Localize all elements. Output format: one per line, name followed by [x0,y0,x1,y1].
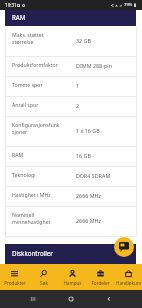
staticText: Teknologi [12,171,62,178]
staticText: Hampus [63,280,82,286]
staticText: 1 x 16 GB [76,127,136,134]
button[interactable]: Teknologi [0,167,142,187]
staticText: Diskkontroller [12,249,53,257]
staticText: 2 [76,102,136,109]
staticText: Fordeler [91,280,110,286]
staticText: Handlekurv [116,280,141,286]
staticText: Produktformfaktor [12,61,62,68]
staticText: 2666 MHz [76,217,136,224]
staticText: 32 GB [76,37,136,44]
staticText: Nominell minnehastighet [12,211,62,226]
staticText: RAM [12,151,62,158]
button[interactable]: RAM [5,10,136,26]
button[interactable]: Konfigurasjonsfunk sjoner [0,117,142,147]
button[interactable]: Fordeler [86,264,114,290]
button[interactable]: Home [66,294,76,304]
button[interactable]: Nominell minnehastighet [0,207,142,237]
button[interactable]: Produkter [0,264,29,290]
staticText: Søk [40,280,48,286]
button[interactable]: Maks. støttet størrelse [0,27,142,57]
staticText: DIMM 288-pin [76,62,136,69]
button[interactable]: Handlekurv [114,264,142,290]
staticText: Antall spor [12,101,62,108]
button[interactable]: Antall spor [0,97,142,117]
staticText: Produkter [4,280,26,286]
staticText: 1 [76,82,136,89]
button[interactable]: Hampus [58,264,86,290]
button[interactable]: Back [104,294,114,304]
staticText: Hastighet i MHz [12,191,62,198]
button[interactable]: Tomme spor [0,77,142,97]
staticText: 19:31 [5,2,17,8]
button[interactable]: Hastighet i MHz [0,187,142,207]
staticText: Maks. støttet størrelse [12,31,62,46]
button[interactable]: Diskkontroller [5,244,136,264]
button[interactable]: Chat [114,237,134,257]
button[interactable]: RAM [0,147,142,167]
staticText: 79% [124,2,133,8]
staticText: 2666 MHz [76,192,136,199]
staticText: Tomme spor [12,81,62,88]
staticText: Konfigurasjonsfunk sjoner [12,121,62,136]
button[interactable]: Recents [28,294,38,304]
staticText: 16 GB [76,152,136,159]
staticText: DDR4 SDRAM [76,172,136,179]
staticText: RAM [12,13,26,21]
button[interactable]: Produktformfaktor [0,57,142,77]
button[interactable]: Søk [29,264,58,290]
